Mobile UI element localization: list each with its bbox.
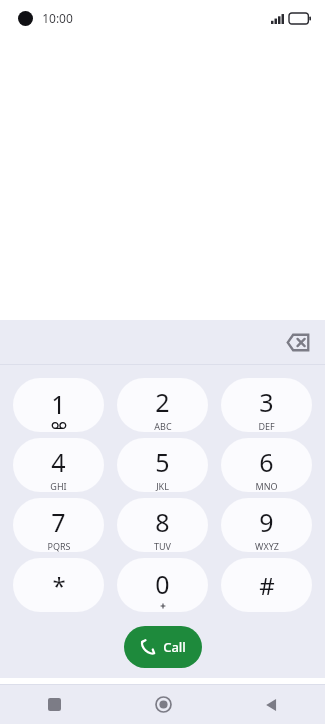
button[interactable]: * [13,558,104,612]
staticText: 7 [51,505,66,539]
staticText: * [52,569,66,602]
staticText: 8 [155,505,170,539]
staticText: MNO [255,480,278,492]
staticText: TUV [154,540,171,552]
staticText: 10:00 [42,10,73,26]
button[interactable]: # [221,558,312,612]
button[interactable]: 7 [13,498,104,552]
staticText: 0 [155,567,170,601]
button[interactable]: Backspace [281,325,315,359]
button[interactable]: 8 [117,498,208,552]
staticText: JKL [156,480,169,492]
button[interactable]: 4 [13,438,104,492]
button[interactable]: 0 [117,558,208,612]
staticText: PQRS [47,540,71,552]
button[interactable]: 2 [117,378,208,432]
button[interactable]: 3 [221,378,312,432]
staticText: 2 [155,385,170,419]
staticText: 9 [259,505,274,539]
button[interactable]: 5 [117,438,208,492]
staticText: GHI [50,480,67,492]
staticText: 4 [51,445,66,479]
button[interactable]: 6 [221,438,312,492]
button[interactable]: Recent apps [0,685,109,724]
staticText: 1 [51,387,66,421]
staticText: 5 [155,445,170,479]
staticText: ABC [154,420,172,432]
staticText: WXYZ [255,540,279,552]
button[interactable]: 9 [221,498,312,552]
staticText: # [259,569,275,602]
button[interactable]: Call [124,626,202,668]
button[interactable]: Back [217,685,325,724]
staticText: 6 [259,445,274,479]
staticText: 3 [259,385,274,419]
button[interactable]: 1 [13,378,104,432]
staticText: DEF [258,420,275,432]
staticText: Call [163,638,186,656]
button[interactable]: Home [109,685,217,724]
